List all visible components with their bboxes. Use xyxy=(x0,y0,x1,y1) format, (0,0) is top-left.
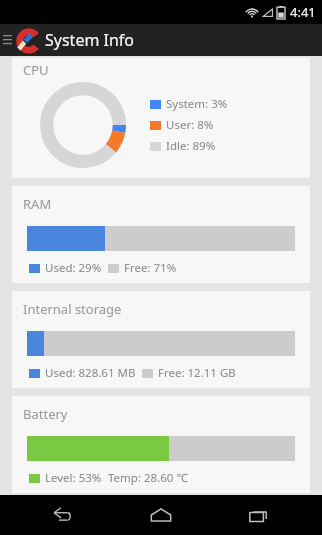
staticText: RAM xyxy=(23,195,52,213)
staticText: Level: 53% xyxy=(45,470,102,486)
button[interactable]: Home xyxy=(126,495,196,535)
button[interactable]: Recent apps xyxy=(224,495,294,535)
button[interactable]: Back xyxy=(28,495,98,535)
staticText: Battery xyxy=(23,405,68,423)
staticText: System Info xyxy=(45,29,135,51)
staticText: 4:41 xyxy=(290,3,316,21)
button[interactable]: Battery xyxy=(12,396,310,493)
button[interactable]: RAM xyxy=(12,186,310,283)
staticText: Idle: 89% xyxy=(166,138,216,154)
staticText: Free: 71% xyxy=(124,260,177,276)
staticText: Temp: 28.60 ℃ xyxy=(108,470,188,486)
staticText: Used: 828.61 MB xyxy=(45,365,136,381)
button[interactable]: CCleaner app icon xyxy=(14,24,40,56)
staticText: CPU xyxy=(23,61,49,79)
button[interactable]: Open navigation drawer xyxy=(0,24,14,56)
button[interactable]: Internal storage xyxy=(12,291,310,388)
staticText: Internal storage xyxy=(23,300,122,318)
staticText: Used: 29% xyxy=(45,260,102,276)
staticText: User: 8% xyxy=(166,117,214,133)
button[interactable]: CPU xyxy=(12,58,310,178)
staticText: System: 3% xyxy=(166,96,228,112)
staticText: Free: 12.11 GB xyxy=(158,365,236,381)
